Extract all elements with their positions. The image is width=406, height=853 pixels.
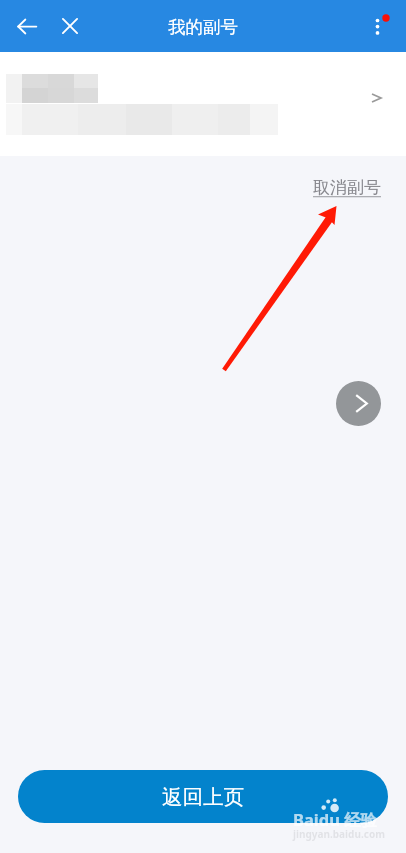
button[interactable]: Close (53, 9, 87, 43)
button[interactable] (0, 52, 406, 156)
staticText: Baidu 经验 (293, 808, 378, 831)
button[interactable]: More options (363, 4, 399, 40)
button[interactable]: Back (10, 9, 44, 43)
staticText: jingyan.baidu.com (293, 827, 385, 841)
button[interactable]: 返回上页 (18, 770, 388, 823)
staticText: 返回上页 (162, 784, 244, 810)
button[interactable]: 取消副号 (313, 177, 381, 198)
staticText: 我的副号 (168, 16, 238, 38)
staticText: 取消副号 (313, 177, 381, 198)
button[interactable]: Next (336, 381, 381, 426)
